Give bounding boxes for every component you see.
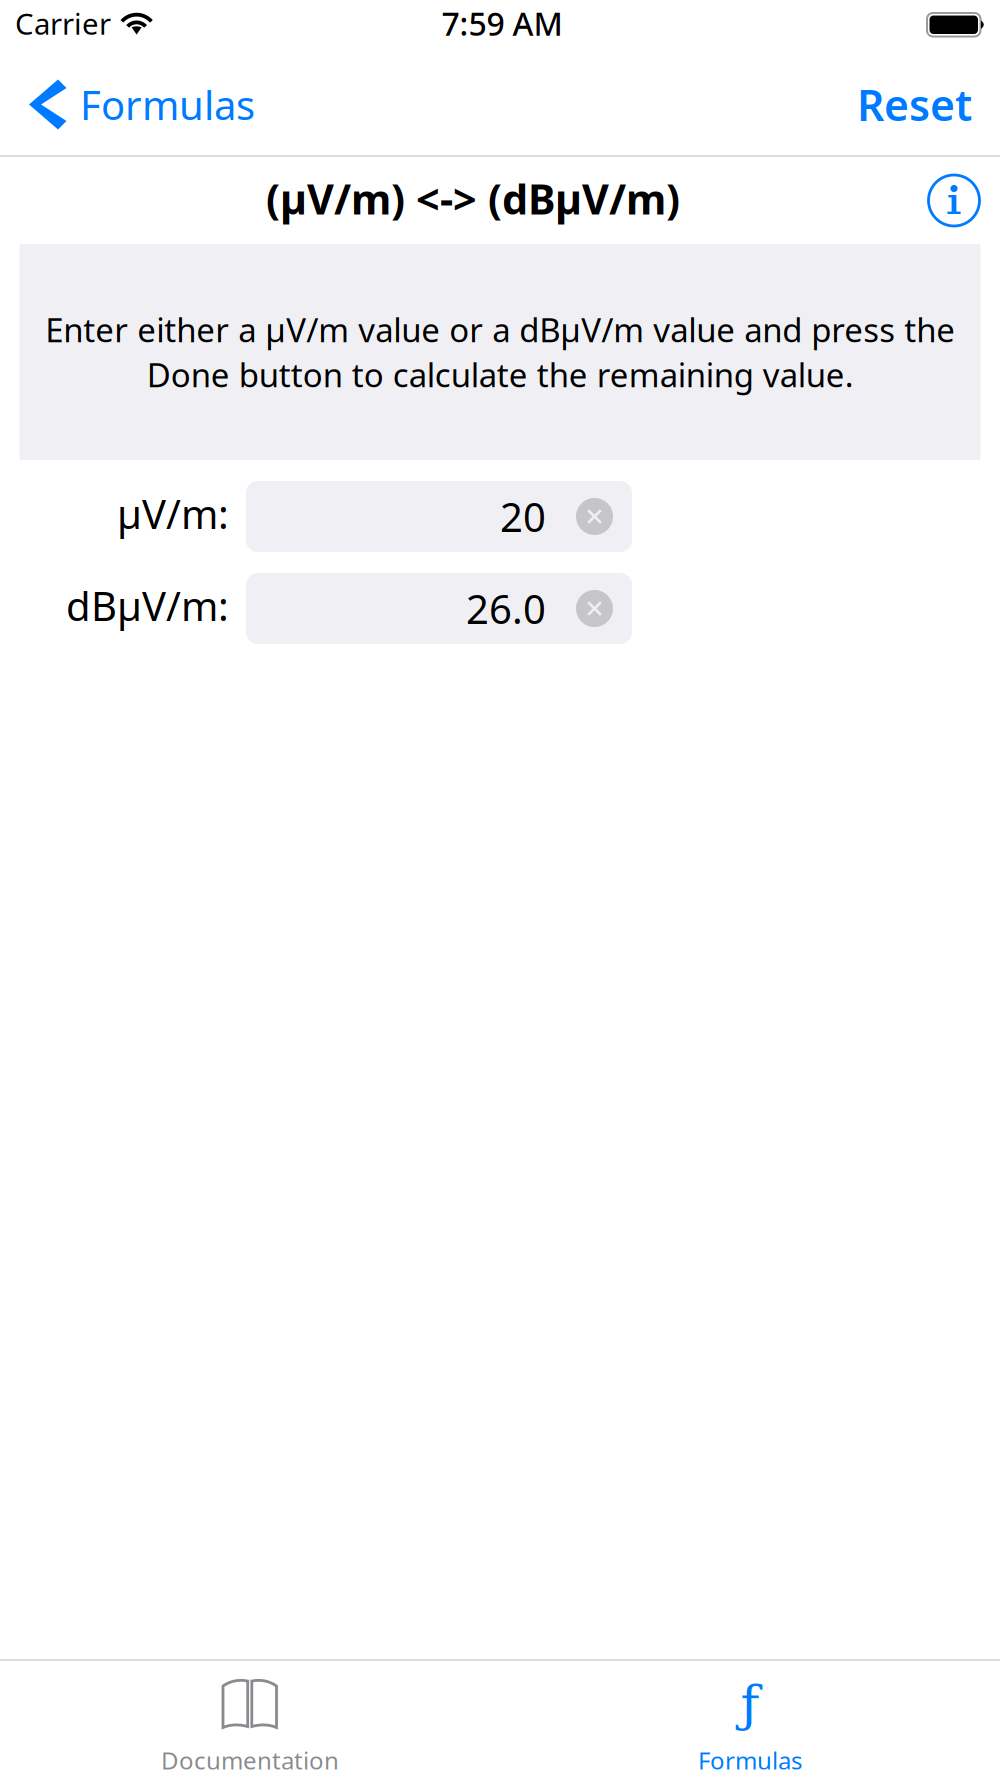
button[interactable]: 20 [246,481,632,552]
staticText: 26.0 [466,582,546,635]
staticText: ƒ [740,1674,759,1733]
button[interactable]: 26.0 [246,573,632,644]
button[interactable]: Reset [841,54,1000,155]
staticText: Carrier [15,4,111,43]
staticText: Documentation [161,1744,339,1776]
button[interactable]: Formulas [0,54,271,155]
staticText: 20 [500,490,546,543]
staticText: Enter either a µV/m value or a dBµV/m va… [45,307,955,397]
staticText: Formulas [80,78,255,131]
staticText: 7:59 AM [441,2,562,44]
staticText: µV/m: [117,487,229,540]
staticText: (µV/m) <-> (dBµV/m) [266,171,680,226]
button[interactable]: ƒ [500,1661,1000,1778]
staticText: Reset [857,76,972,133]
button[interactable]: Information [926,157,982,244]
staticText: dBµV/m: [66,579,229,632]
button[interactable]: Documentation [0,1661,500,1778]
staticText: Formulas [698,1744,802,1776]
